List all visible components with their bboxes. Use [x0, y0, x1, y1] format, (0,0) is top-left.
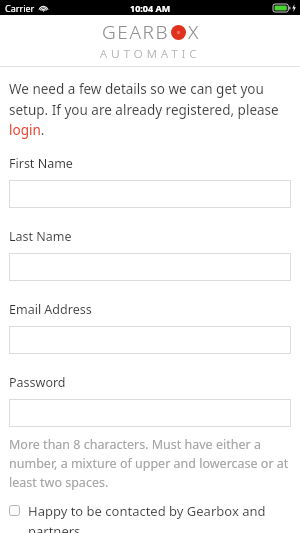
staticText: We need a few details so we can get you … — [9, 80, 291, 139]
staticText: More than 8 characters. Must have either… — [9, 436, 291, 491]
staticText: Happy to be contacted by Gearbox and par… — [28, 502, 291, 533]
staticText: Carrier — [5, 2, 35, 14]
button[interactable]: Happy to be contacted checkbox — [9, 502, 291, 533]
staticText: Password — [9, 374, 66, 391]
staticText: GEARB — [102, 19, 170, 45]
staticText: Last Name — [9, 228, 72, 245]
staticText: AUTOMATIC — [100, 46, 201, 62]
button[interactable] — [9, 326, 291, 354]
staticText: Email Address — [9, 301, 92, 318]
staticText: First Name — [9, 155, 73, 172]
other: Happy to be contacted checkbox — [9, 505, 20, 516]
staticText: 10:04 AM — [130, 2, 171, 14]
button[interactable] — [9, 253, 291, 281]
button[interactable] — [9, 399, 291, 427]
button[interactable] — [9, 180, 291, 208]
staticText: X — [188, 19, 200, 45]
